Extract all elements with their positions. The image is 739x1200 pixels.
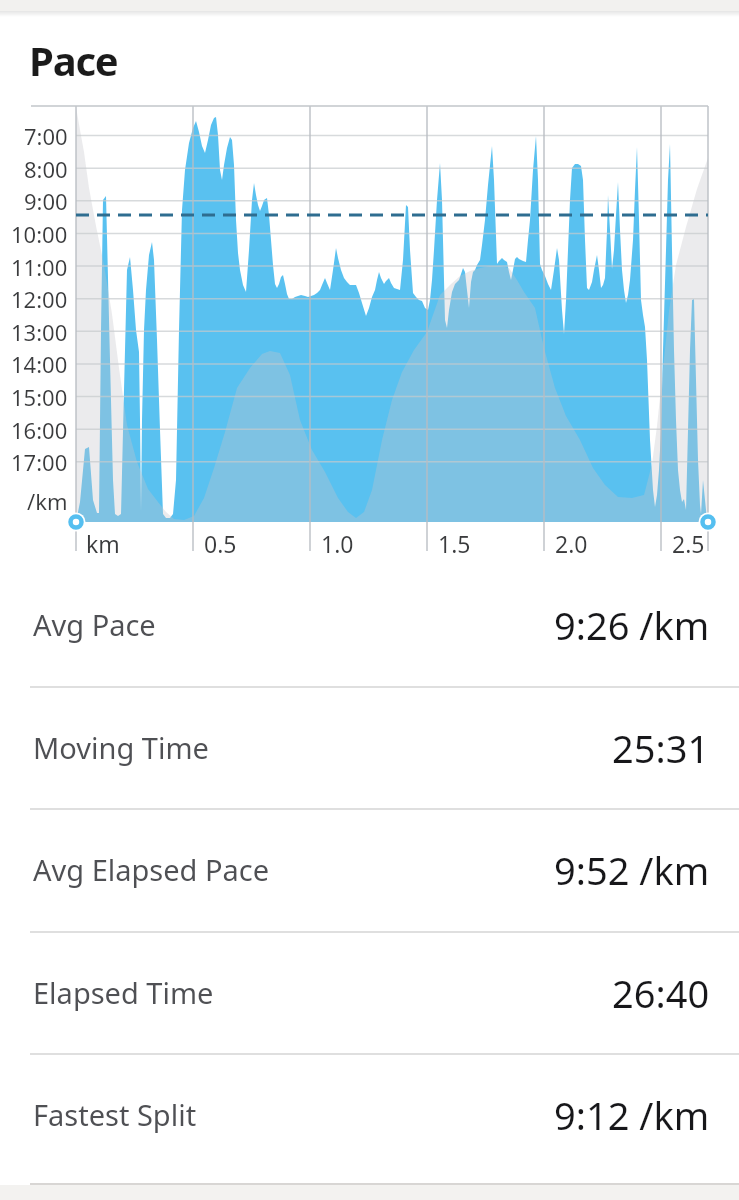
staticText: 7:00 (24, 121, 68, 149)
staticText: 17:00 (11, 447, 68, 475)
button[interactable]: Moving Time (0, 686, 739, 809)
staticText: 12:00 (11, 284, 68, 312)
staticText: 9:00 (24, 186, 68, 214)
staticText: Fastest Split (33, 1095, 197, 1134)
staticText: 10:00 (11, 219, 68, 247)
staticText: 15:00 (11, 382, 68, 410)
staticText: 8:00 (24, 154, 68, 182)
staticText: 9:52 /km (554, 844, 710, 896)
button[interactable]: Avg Pace (0, 563, 739, 686)
staticText: 16:00 (11, 415, 68, 443)
staticText: Pace (29, 33, 118, 87)
staticText: 0.5 (204, 528, 237, 556)
staticText: 25:31 (612, 722, 710, 774)
button[interactable]: Fastest Split (0, 1053, 739, 1176)
staticText: 9:26 /km (554, 599, 710, 651)
staticText: 26:40 (612, 967, 710, 1019)
staticText: 13:00 (11, 317, 68, 345)
button[interactable]: Elapsed Time (0, 931, 739, 1054)
button[interactable]: Avg Elapsed Pace (0, 808, 739, 931)
staticText: /km (27, 486, 68, 514)
staticText: Elapsed Time (33, 973, 214, 1012)
staticText: 9:12 /km (554, 1089, 710, 1141)
staticText: Moving Time (33, 728, 209, 767)
staticText: 11:00 (11, 252, 68, 280)
staticText: 1.0 (321, 528, 354, 556)
staticText: 2.0 (555, 528, 588, 556)
staticText: 2.5 (672, 528, 705, 556)
staticText: Avg Pace (33, 605, 156, 644)
staticText: Avg Elapsed Pace (33, 850, 270, 889)
staticText: km (86, 528, 120, 556)
staticText: 14:00 (11, 349, 68, 377)
staticText: 1.5 (438, 528, 471, 556)
